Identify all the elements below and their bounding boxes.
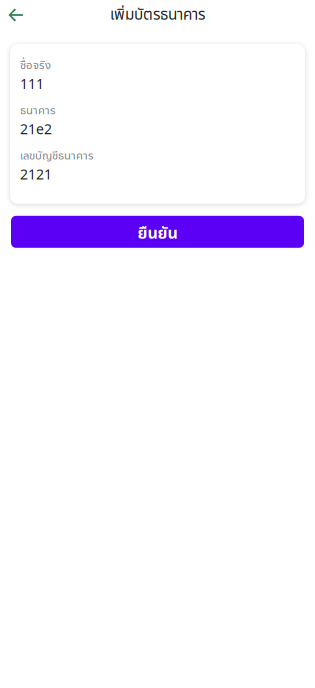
staticText: ชื่อจริง	[20, 57, 51, 74]
staticText: 111	[20, 74, 44, 95]
button[interactable]: Back	[0, 0, 32, 30]
staticText: 2121	[20, 165, 52, 186]
staticText: เลขบัญชีธนาคาร	[20, 148, 94, 165]
staticText: เพิ่มบัตรธนาคาร	[110, 3, 205, 27]
staticText: ธนาคาร	[20, 102, 56, 119]
staticText: ยืนยัน	[137, 222, 177, 246]
button[interactable]: ยืนยัน	[11, 216, 304, 248]
staticText: 21e2	[20, 119, 52, 141]
